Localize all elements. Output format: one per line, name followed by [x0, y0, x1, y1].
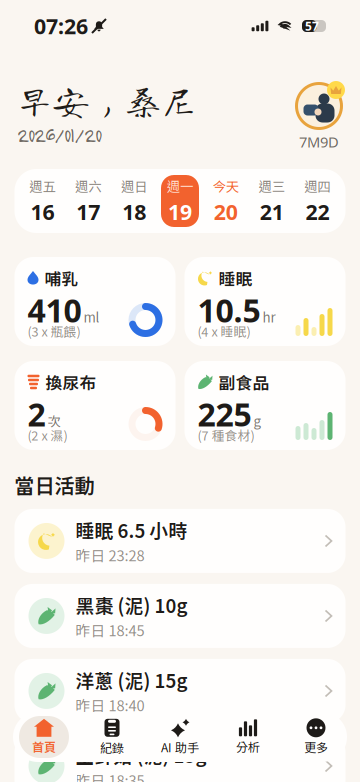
staticText: 週六: [75, 176, 101, 195]
button[interactable]: 週四: [298, 175, 336, 227]
staticText: 今天: [213, 176, 239, 195]
staticText: (4 x 睡眠): [197, 322, 250, 340]
button[interactable]: 金針菇 (泥) 15g: [14, 734, 345, 782]
staticText: 410: [27, 289, 81, 331]
staticText: 2: [27, 393, 45, 435]
staticText: 哺乳: [44, 266, 78, 290]
staticText: (7 種食材): [197, 426, 254, 444]
staticText: 副食品: [218, 370, 269, 394]
staticText: 昨日 23:28: [75, 544, 144, 566]
staticText: (3 x 瓶餵): [27, 322, 80, 340]
staticText: 週日: [121, 176, 147, 195]
staticText: hr: [262, 307, 275, 326]
staticText: 17: [76, 197, 100, 226]
button[interactable]: 週三: [253, 175, 291, 227]
staticText: 週四: [304, 176, 330, 195]
staticText: 洋蔥 (泥) 15g: [75, 666, 187, 693]
button[interactable]: 更多: [291, 716, 341, 758]
staticText: 昨日 18:35: [75, 769, 144, 782]
staticText: 週五: [29, 176, 55, 195]
staticText: (2 x 濕): [27, 426, 67, 444]
staticText: 週一: [167, 176, 193, 195]
staticText: 19: [168, 197, 192, 226]
staticText: AI 助手: [161, 738, 199, 756]
staticText: 57: [305, 18, 319, 34]
staticText: 21: [260, 197, 284, 226]
staticText: 金針菇 (泥) 15g: [75, 741, 206, 768]
staticText: 20: [214, 197, 238, 226]
staticText: 昨日 18:40: [75, 694, 144, 716]
staticText: 睡眠: [218, 266, 252, 290]
staticText: 分析: [236, 738, 260, 755]
staticText: 早安，桑尼: [17, 82, 197, 118]
staticText: 週三: [259, 176, 285, 195]
button[interactable]: 週一: [161, 175, 199, 227]
staticText: 10.5: [197, 289, 260, 331]
staticText: 07:26: [34, 12, 88, 40]
staticText: 2026/01/20: [17, 123, 101, 147]
staticText: 黑棗 (泥) 10g: [75, 591, 187, 618]
button[interactable]: 黑棗 (泥) 10g: [14, 584, 345, 648]
staticText: 睡眠 6.5 小時: [75, 516, 187, 543]
staticText: g: [253, 411, 261, 430]
button[interactable]: 洋蔥 (泥) 15g: [14, 659, 345, 723]
button[interactable]: AI 助手: [155, 716, 205, 758]
staticText: 18: [122, 197, 146, 226]
button[interactable]: 紀錄: [87, 716, 137, 758]
button[interactable]: 今天: [207, 175, 245, 227]
button[interactable]: 首頁: [19, 716, 69, 758]
button[interactable]: 睡眠 6.5 小時: [14, 509, 345, 573]
button[interactable]: 週五: [23, 175, 61, 227]
staticText: 次: [47, 411, 60, 430]
staticText: 昨日 18:45: [75, 619, 144, 641]
staticText: 22: [305, 197, 329, 226]
staticText: 7M9D: [299, 132, 339, 151]
button[interactable]: 週六: [69, 175, 107, 227]
button[interactable]: 週日: [115, 175, 153, 227]
staticText: 16: [30, 197, 54, 226]
button[interactable]: 分析: [223, 716, 273, 758]
staticText: 225: [197, 393, 251, 435]
staticText: 首頁: [32, 738, 56, 755]
staticText: 當日活動: [14, 470, 94, 499]
staticText: 更多: [304, 738, 328, 756]
staticText: ml: [83, 307, 99, 326]
staticText: 換尿布: [45, 370, 96, 394]
staticText: 紀錄: [100, 739, 124, 756]
